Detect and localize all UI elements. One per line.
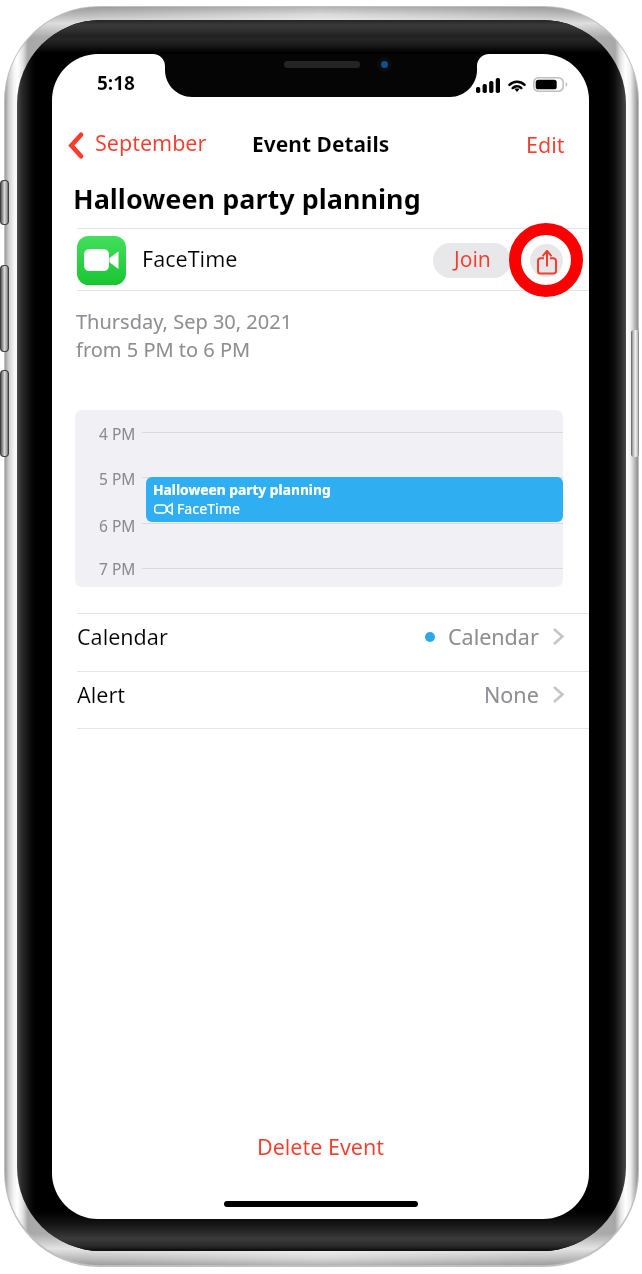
button[interactable]: September <box>64 122 214 162</box>
staticText: Calendar <box>77 622 168 651</box>
staticText: from 5 PM to 6 PM <box>76 336 251 363</box>
button[interactable]: Join <box>433 243 511 278</box>
staticText: Halloween party planning <box>73 180 421 217</box>
staticText: 5 PM <box>99 468 136 489</box>
staticText: Edit <box>526 130 565 159</box>
button[interactable]: Halloween party planning <box>146 477 563 522</box>
staticText: September <box>95 128 207 157</box>
staticText: 5:18 <box>97 70 135 96</box>
staticText: FaceTime <box>177 499 240 518</box>
button[interactable]: Alert <box>52 671 589 729</box>
staticText: Alert <box>77 680 126 709</box>
staticText: Event Details <box>252 130 390 159</box>
staticText: 4 PM <box>99 423 136 444</box>
staticText: None <box>484 680 539 709</box>
staticText: 6 PM <box>99 515 136 536</box>
button[interactable]: Delete Event <box>52 1126 589 1164</box>
button[interactable]: Share <box>530 244 563 277</box>
staticText: 7 PM <box>99 558 136 579</box>
staticText: FaceTime <box>142 244 238 273</box>
staticText: Halloween party planning <box>153 480 331 499</box>
staticText: Thursday, Sep 30, 2021 <box>76 308 293 335</box>
staticText: Join <box>454 245 491 274</box>
staticText: Delete Event <box>257 1132 385 1161</box>
button[interactable]: Calendar <box>52 613 589 671</box>
button[interactable]: Edit <box>514 123 576 163</box>
staticText: Calendar <box>448 622 539 651</box>
